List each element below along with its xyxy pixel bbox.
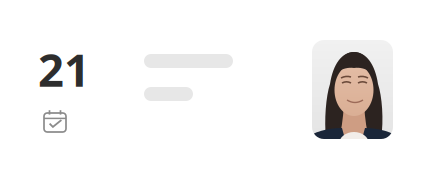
button[interactable]: 21 (0, 0, 110, 176)
button[interactable]: Profile photo (312, 40, 393, 139)
staticText: 21 (38, 39, 90, 99)
